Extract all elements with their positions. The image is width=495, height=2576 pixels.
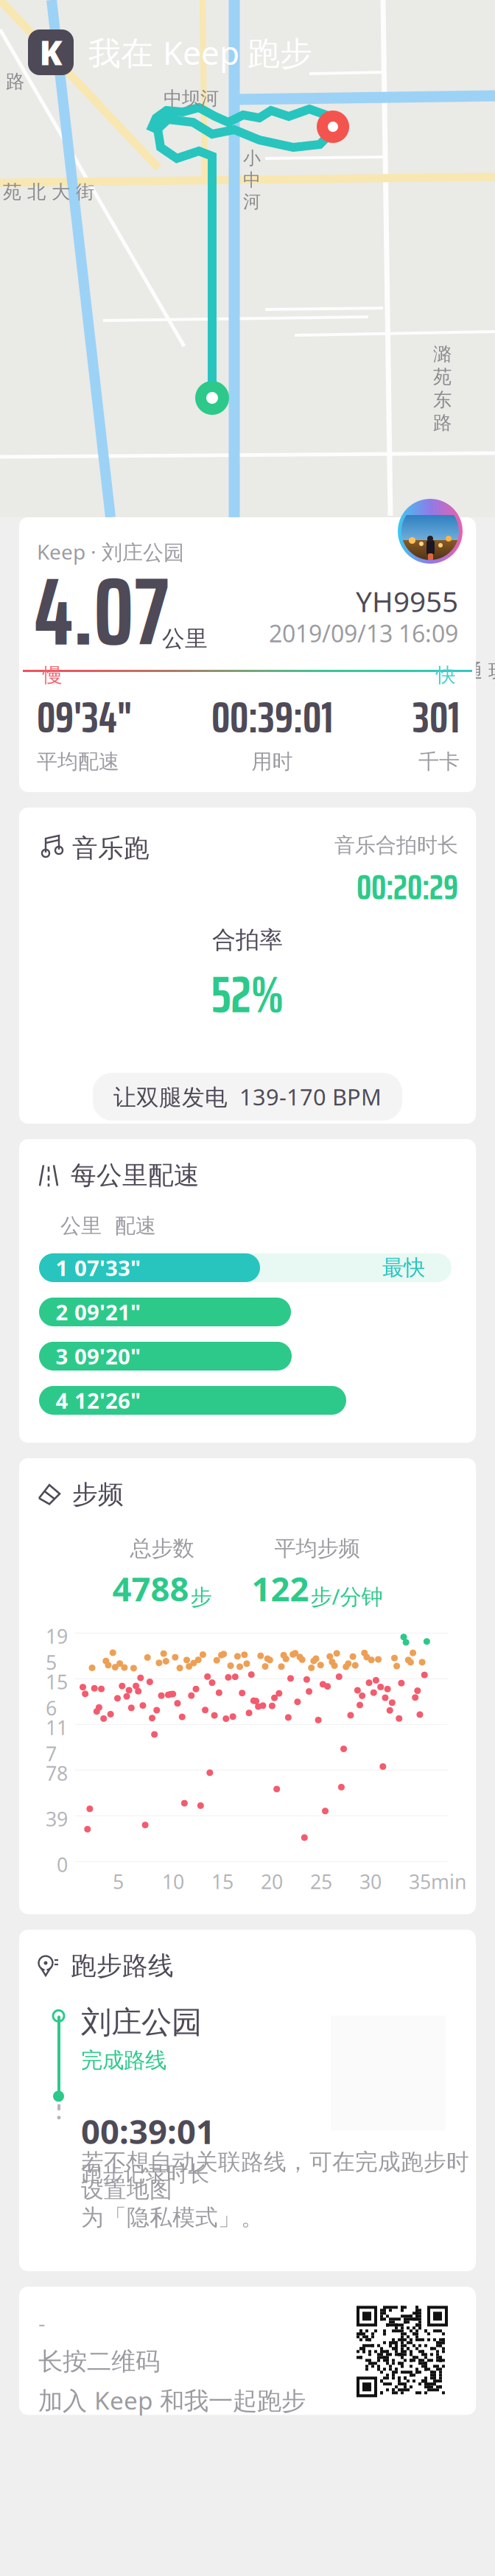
staticText: 千卡 bbox=[418, 749, 460, 774]
staticText: 00:39:01 bbox=[211, 682, 333, 752]
staticText: 总步数 bbox=[130, 1535, 194, 1562]
staticText: 3 bbox=[56, 1342, 68, 1371]
staticText: 1 bbox=[56, 1253, 68, 1282]
staticText: 苑 北 大 街 bbox=[3, 181, 94, 203]
staticText: 4 bbox=[56, 1386, 68, 1415]
staticText: 0 bbox=[57, 1852, 68, 1878]
staticText: K bbox=[39, 30, 62, 74]
staticText: 慢 bbox=[43, 663, 63, 687]
staticText: 30 bbox=[359, 1868, 382, 1895]
staticText: 09'20" bbox=[74, 1342, 141, 1371]
staticText: 配速 bbox=[115, 1213, 156, 1239]
staticText: 让双腿发电 139-170 BPM bbox=[113, 1082, 382, 1112]
staticText: 最快 bbox=[382, 1254, 425, 1281]
staticText: 公里 bbox=[60, 1213, 102, 1239]
staticText: Keep · 刘庄公园 bbox=[37, 538, 184, 565]
staticText: 音乐合拍时长 bbox=[334, 833, 458, 858]
staticText: 快 bbox=[436, 663, 456, 687]
staticText: 15 bbox=[211, 1868, 234, 1895]
staticText: 平均步频 bbox=[274, 1535, 360, 1562]
staticText: 4.07 bbox=[34, 536, 169, 686]
staticText: 39 bbox=[46, 1806, 68, 1832]
staticText: 07'33" bbox=[74, 1253, 141, 1282]
staticText: YH9955 bbox=[356, 582, 458, 620]
staticText: 合拍率 bbox=[212, 925, 283, 954]
staticText: 小 中 河 bbox=[243, 147, 261, 213]
staticText: 跑步记录时长 bbox=[81, 2161, 209, 2187]
staticText: 步/分钟 bbox=[310, 1582, 383, 1611]
staticText: 09'34" bbox=[37, 682, 132, 752]
staticText: 117 bbox=[46, 1714, 68, 1767]
staticText: 音乐跑 bbox=[72, 833, 150, 864]
staticText: 刘庄公园 bbox=[81, 2004, 202, 2041]
staticText: 20 bbox=[261, 1868, 283, 1895]
staticText: 10 bbox=[162, 1868, 184, 1895]
staticText: 每公里配速 bbox=[71, 1160, 200, 1191]
staticText: 301 bbox=[412, 682, 460, 752]
staticText: 00:20:29 bbox=[357, 859, 458, 915]
staticText: 长按二维码 bbox=[38, 2346, 160, 2376]
staticText: 我在 Keep 跑步 bbox=[88, 31, 312, 74]
staticText: 步频 bbox=[72, 1479, 124, 1510]
staticText: 78 bbox=[46, 1760, 68, 1786]
staticText: 2 bbox=[56, 1298, 68, 1326]
staticText: 00:39:01 bbox=[81, 2109, 215, 2153]
staticText: 步 bbox=[190, 1584, 212, 1611]
staticText: 加入 Keep 和我一起跑步 bbox=[38, 2384, 306, 2417]
staticText: 若不想自动关联路线，可在完成跑步时设置地图 为「隐私模式」。 bbox=[81, 2148, 469, 2231]
staticText: 公里 bbox=[162, 625, 208, 653]
staticText: 12'26" bbox=[74, 1386, 141, 1415]
staticText: 跑步路线 bbox=[71, 1950, 174, 1982]
staticText: 潞 苑 东 路 bbox=[433, 343, 452, 434]
staticText: 4788 bbox=[112, 1566, 189, 1611]
staticText: 35min bbox=[409, 1868, 466, 1895]
staticText: 平均配速 bbox=[37, 749, 119, 774]
staticText: 完成路线 bbox=[81, 2047, 166, 2074]
staticText: 122 bbox=[252, 1566, 309, 1611]
staticText: 中坝河 bbox=[164, 87, 219, 110]
staticText: 通 玥 bbox=[464, 659, 495, 682]
staticText: 路 bbox=[6, 70, 24, 93]
staticText: 用时 bbox=[252, 749, 293, 774]
staticText: 52% bbox=[211, 954, 284, 1035]
staticText: 5 bbox=[113, 1868, 124, 1895]
staticText: 09'21" bbox=[74, 1298, 141, 1326]
staticText: - bbox=[38, 2309, 45, 2338]
staticText: 156 bbox=[46, 1669, 68, 1721]
staticText: 195 bbox=[46, 1623, 68, 1675]
staticText: 2019/09/13 16:09 bbox=[269, 617, 458, 649]
staticText: 25 bbox=[310, 1868, 332, 1895]
